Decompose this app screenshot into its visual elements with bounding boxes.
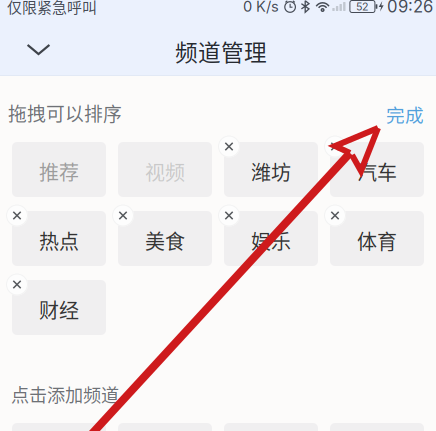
button[interactable]: Remove 体育 — [324, 204, 346, 226]
button[interactable]: 潍坊 — [224, 142, 318, 197]
staticText: 娱乐 — [251, 226, 291, 255]
staticText: 财经 — [39, 295, 79, 324]
button[interactable]: 娱乐 — [224, 211, 318, 266]
button[interactable]: 美食 — [118, 211, 212, 266]
staticText: 体育 — [357, 226, 397, 255]
button[interactable]: Remove 娱乐 — [218, 204, 240, 226]
button[interactable]: 视频 — [118, 142, 212, 197]
staticText: 潍坊 — [251, 157, 291, 186]
button[interactable]: Remove 汽车 — [324, 135, 346, 157]
staticText: 频道管理 — [175, 35, 267, 67]
staticText: 美食 — [145, 226, 185, 255]
staticText: 52 — [356, 0, 369, 13]
staticText: 点击添加频道 — [11, 381, 119, 407]
button[interactable]: 体育 — [330, 211, 424, 266]
button[interactable]: Collapse — [12, 29, 64, 69]
staticText: 拖拽可以排序 — [8, 99, 122, 127]
button[interactable]: Remove 热点 — [6, 204, 28, 226]
staticText: 视频 — [145, 157, 185, 186]
button[interactable]: 汽车 — [330, 142, 424, 197]
button[interactable]: Remove 美食 — [112, 204, 134, 226]
staticText: 09:26 — [387, 0, 433, 17]
button[interactable]: 完成 — [378, 98, 432, 130]
button[interactable]: 热点 — [12, 211, 106, 266]
button[interactable]: Remove 潍坊 — [218, 135, 240, 157]
button[interactable]: 财经 — [12, 280, 106, 335]
staticText: 热点 — [39, 226, 79, 255]
button[interactable]: Remove 财经 — [6, 273, 28, 295]
staticText: 0 K/s — [243, 0, 279, 15]
button[interactable]: 推荐 — [12, 142, 106, 197]
staticText: 推荐 — [39, 157, 79, 186]
staticText: 汽车 — [357, 157, 397, 186]
staticText: 完成 — [386, 100, 424, 127]
staticText: 仅限紧急呼叫 — [7, 0, 97, 17]
